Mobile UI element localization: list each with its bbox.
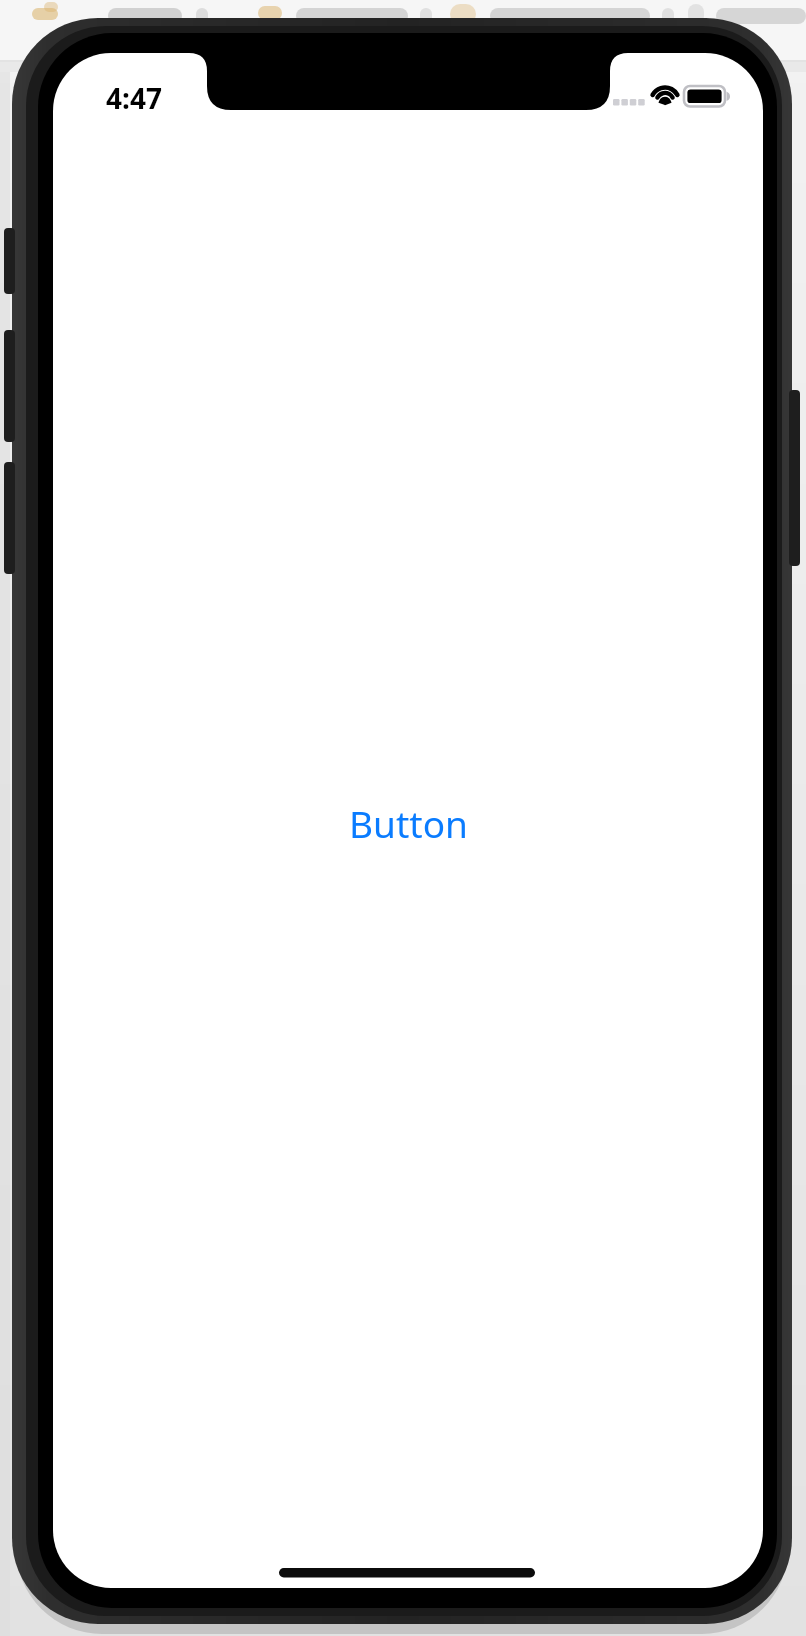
staticText: 4:47: [106, 79, 162, 111]
staticText: Button: [349, 798, 468, 846]
button[interactable]: Button: [340, 798, 476, 846]
